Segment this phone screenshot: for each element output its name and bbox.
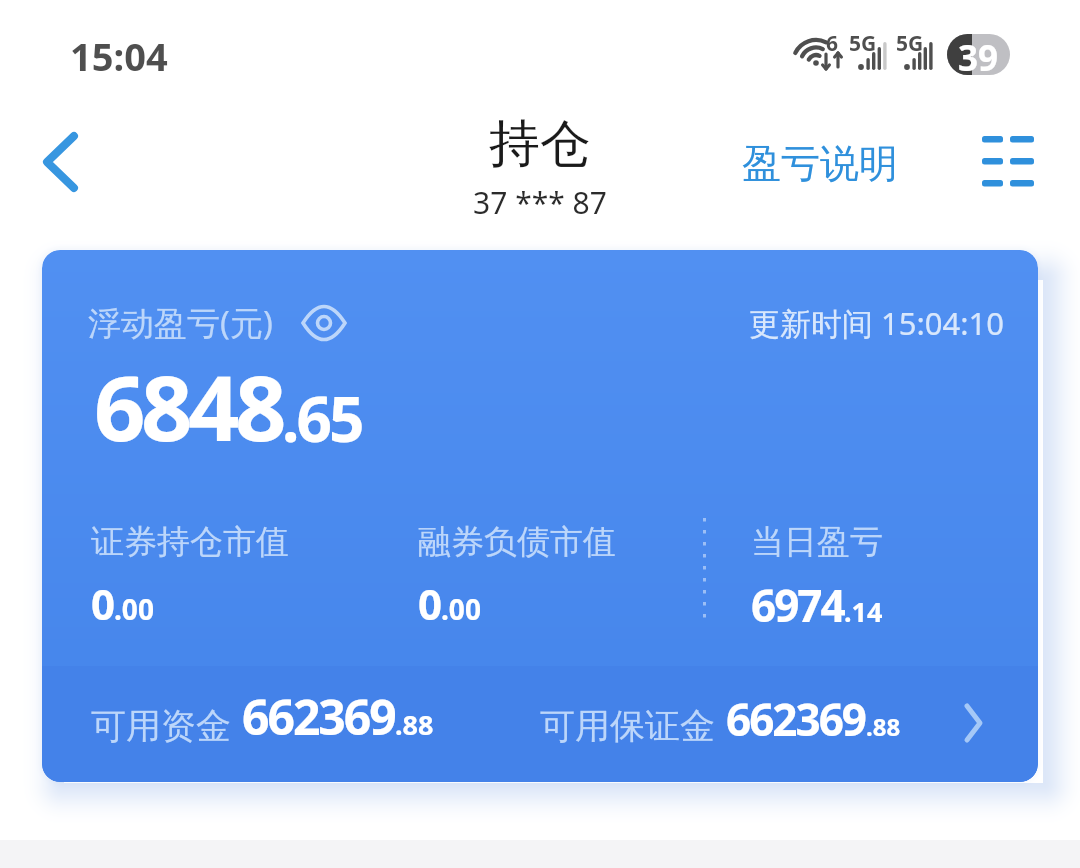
- staticText: 15:04: [70, 30, 168, 82]
- staticText: 0: [418, 575, 441, 632]
- staticText: 浮动盈亏(元): [88, 300, 273, 345]
- staticText: 5G: [849, 29, 877, 58]
- staticText: .88: [395, 706, 434, 743]
- staticText: 6848: [94, 345, 282, 468]
- staticText: .00: [114, 590, 154, 628]
- button[interactable]: 可用资金: [42, 666, 1038, 782]
- staticText: 证券持仓市值: [91, 521, 289, 563]
- staticText: 6974: [751, 575, 844, 635]
- staticText: .14: [844, 593, 883, 630]
- staticText: 662369: [726, 689, 866, 749]
- staticText: 662369: [242, 684, 395, 749]
- staticText: .88: [866, 710, 901, 743]
- staticText: 5G: [896, 29, 924, 58]
- button[interactable]: [301, 305, 347, 341]
- button[interactable]: 浮动盈亏(元): [42, 250, 1038, 782]
- staticText: 39: [958, 34, 999, 75]
- staticText: 37 *** 87: [0, 182, 1080, 223]
- staticText: 6: [826, 29, 839, 58]
- button[interactable]: 盈亏说明: [742, 139, 898, 188]
- staticText: 更新时间 15:04:10: [749, 302, 1005, 344]
- staticText: 持仓: [0, 112, 1080, 176]
- button[interactable]: [40, 130, 88, 194]
- staticText: .00: [441, 590, 481, 628]
- staticText: .65: [282, 376, 362, 460]
- staticText: 可用资金: [91, 704, 231, 748]
- button[interactable]: [980, 134, 1036, 190]
- staticText: 可用保证金: [540, 704, 715, 748]
- staticText: 融券负债市值: [418, 521, 616, 563]
- staticText: 当日盈亏: [751, 521, 883, 563]
- staticText: 0: [91, 575, 114, 632]
